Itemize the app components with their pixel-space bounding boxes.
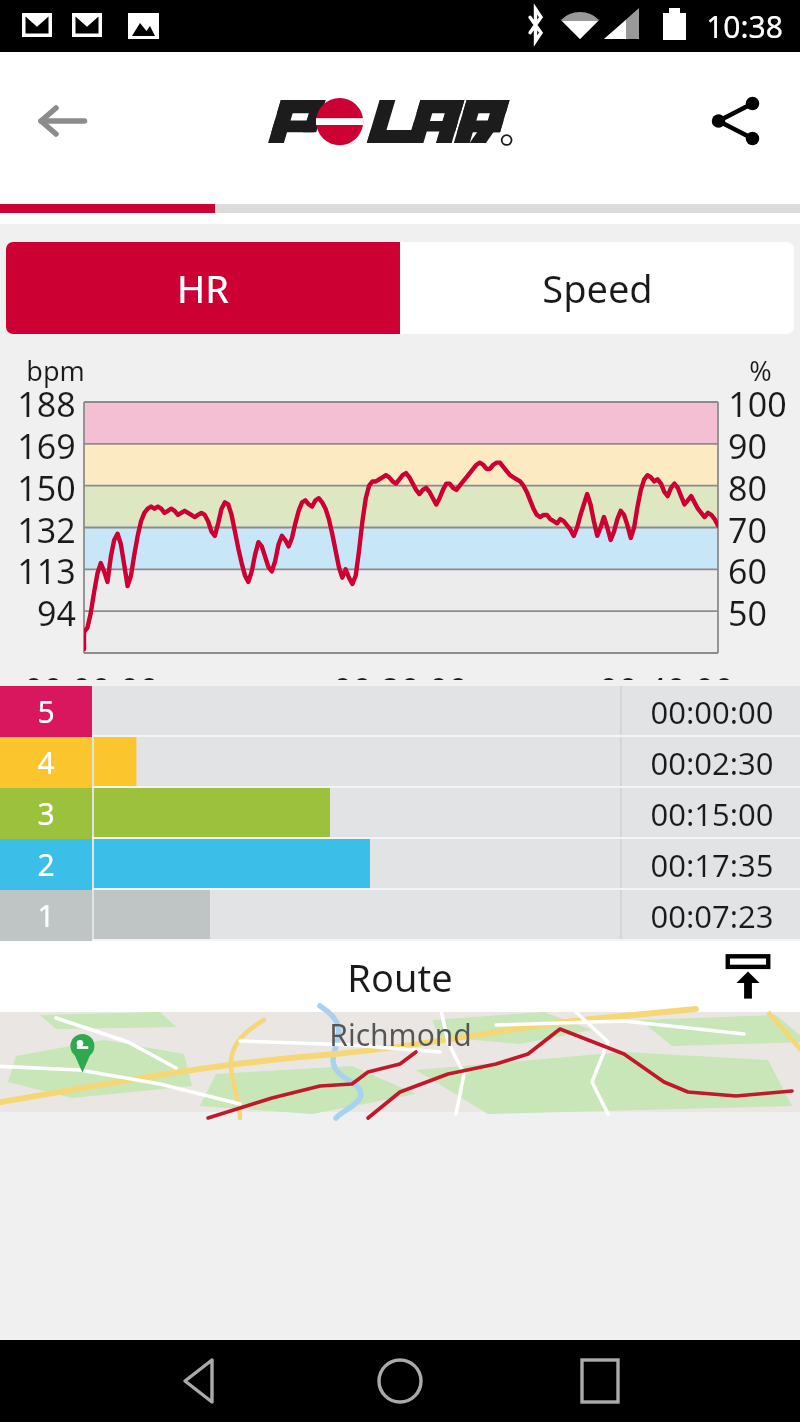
staticText: 00:15:00 (650, 793, 774, 835)
staticText: 2 (37, 844, 55, 885)
button[interactable]: 1 (0, 890, 800, 941)
staticText: 80 (728, 465, 767, 507)
staticText: 50 (728, 590, 767, 632)
staticText: 150 (17, 465, 76, 507)
staticText: 188 (17, 381, 76, 423)
button[interactable]: Recents (534, 1340, 800, 1422)
staticText: 10:38 (706, 6, 783, 47)
staticText: 132 (17, 507, 76, 549)
button[interactable]: Back (0, 1340, 266, 1422)
staticText: 169 (17, 423, 76, 465)
button[interactable]: Speed (400, 242, 794, 334)
staticText: 00:00:00 (650, 691, 774, 733)
button[interactable]: 3 (0, 788, 800, 839)
staticText: 90 (728, 423, 767, 465)
button[interactable]: 5 (0, 686, 800, 737)
staticText: Route (347, 951, 453, 1003)
button[interactable]: 2 (0, 839, 800, 890)
staticText: 100 (728, 381, 787, 423)
staticText: 00:07:23 (650, 895, 774, 937)
staticText: 00:40:00 (599, 667, 734, 713)
staticText: 3 (37, 793, 55, 834)
button[interactable]: Back (24, 83, 100, 159)
staticText: 00:02:30 (650, 742, 774, 784)
staticText: 00:00:00 (24, 667, 159, 713)
staticText: 00:20:00 (333, 667, 468, 713)
staticText: 113 (17, 548, 76, 590)
button[interactable]: Home (267, 1340, 533, 1422)
staticText: 70 (728, 507, 767, 549)
button[interactable]: HR (6, 242, 400, 334)
button[interactable]: Share (698, 83, 774, 159)
button[interactable]: Expand map (718, 947, 778, 1007)
staticText: 60 (728, 548, 767, 590)
staticText: 1 (37, 895, 55, 936)
staticText: bpm (26, 352, 85, 389)
staticText: Richmond (329, 1014, 472, 1055)
button[interactable]: 4 (0, 737, 800, 788)
button[interactable]: Route (0, 941, 800, 1012)
staticText: % (749, 352, 772, 389)
staticText: 4 (37, 742, 55, 783)
staticText: HR (177, 262, 229, 314)
staticText: Speed (542, 262, 653, 314)
staticText: 5 (37, 691, 55, 732)
staticText: 00:17:35 (650, 844, 774, 886)
staticText: 94 (37, 590, 76, 632)
